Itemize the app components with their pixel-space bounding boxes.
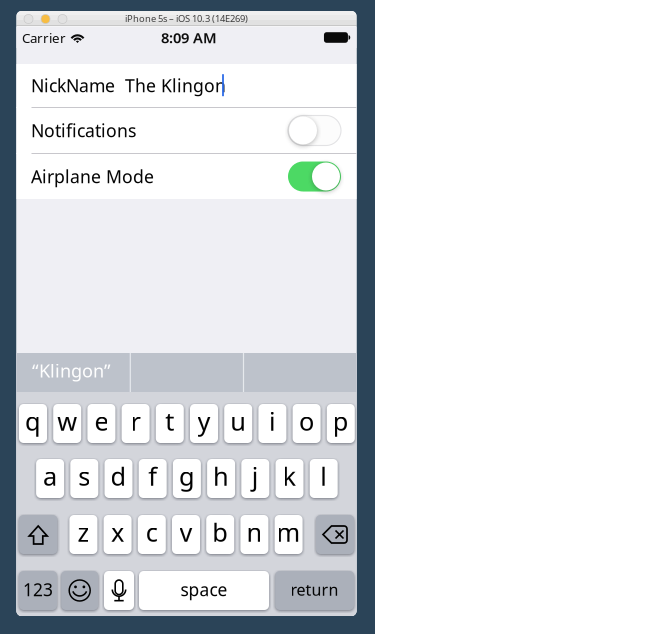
staticText: p (333, 404, 349, 438)
staticText: x (111, 515, 124, 549)
button[interactable]: y (190, 404, 218, 443)
button[interactable]: Dictation (104, 571, 134, 610)
staticText: b (212, 515, 228, 549)
button[interactable]: p (327, 404, 355, 443)
button[interactable]: e (87, 404, 115, 443)
staticText: s (78, 459, 90, 493)
button[interactable]: d (104, 459, 132, 498)
button[interactable]: x (104, 515, 132, 554)
button[interactable]: Shift (19, 515, 57, 554)
staticText: The Klingon (115, 73, 226, 97)
button[interactable]: z (69, 515, 97, 554)
button[interactable]: q (19, 404, 47, 443)
button[interactable]: Emoji (61, 571, 98, 610)
button[interactable]: f (139, 459, 167, 498)
staticText: e (94, 404, 108, 438)
staticText: o (299, 404, 314, 438)
button[interactable]: Airplane Mode (16, 154, 356, 199)
button[interactable]: t (156, 404, 184, 443)
staticText: Notifications (31, 118, 136, 142)
button[interactable]: return (275, 571, 354, 610)
staticText: a (43, 459, 57, 493)
button[interactable]: s (70, 459, 98, 498)
staticText: v (179, 515, 192, 549)
button[interactable]: h (207, 459, 235, 498)
staticText: n (246, 515, 262, 549)
button[interactable]: n (240, 515, 268, 554)
staticText: f (148, 459, 157, 493)
button[interactable]: l (310, 459, 338, 498)
staticText: 8:09 AM (161, 28, 217, 47)
staticText: space (180, 578, 227, 601)
button[interactable]: o (293, 404, 321, 443)
staticText: “Klingon” (32, 358, 111, 383)
staticText: w (57, 404, 77, 438)
button[interactable]: j (241, 459, 269, 498)
staticText: iPhone 5s – iOS 10.3 (14E269) (125, 12, 248, 25)
button[interactable]: 123 (19, 571, 57, 610)
button[interactable]: space (139, 571, 269, 610)
button[interactable]: m (275, 515, 303, 554)
staticText: NickName (31, 73, 115, 97)
button[interactable]: c (138, 515, 166, 554)
staticText: Carrier (22, 29, 66, 47)
staticText: Airplane Mode (31, 164, 154, 188)
staticText: c (146, 515, 158, 549)
button[interactable]: i (258, 404, 286, 443)
staticText: m (277, 515, 301, 549)
button[interactable]: k (275, 459, 303, 498)
staticText: q (25, 404, 41, 438)
staticText: y (197, 404, 210, 438)
staticText: k (282, 459, 296, 493)
staticText: z (77, 515, 89, 549)
staticText: u (230, 404, 246, 438)
button[interactable]: r (122, 404, 150, 443)
button[interactable]: w (53, 404, 81, 443)
staticText: j (252, 459, 259, 493)
staticText: l (320, 459, 327, 493)
button[interactable]: b (206, 515, 234, 554)
staticText: r (131, 404, 141, 438)
staticText: t (165, 404, 174, 438)
button[interactable]: NickName (16, 64, 356, 107)
staticText: i (269, 404, 276, 438)
button[interactable]: v (172, 515, 200, 554)
staticText: g (179, 459, 195, 493)
button[interactable]: g (173, 459, 201, 498)
staticText: return (291, 579, 339, 600)
staticText: h (213, 459, 229, 493)
button[interactable]: Delete (316, 515, 354, 554)
button[interactable]: Notifications (16, 108, 356, 153)
staticText: 123 (23, 578, 53, 601)
button[interactable]: a (36, 459, 64, 498)
button[interactable]: u (224, 404, 252, 443)
staticText: d (110, 459, 126, 493)
